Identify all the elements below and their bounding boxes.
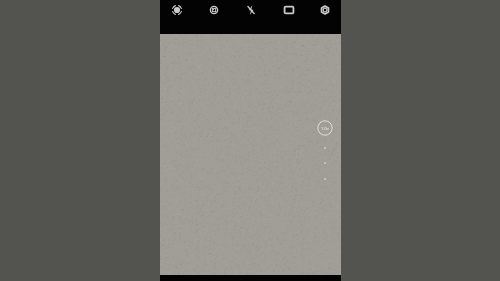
button[interactable]: Aspect ratio <box>279 0 299 20</box>
button[interactable]: Flash off <box>241 0 261 20</box>
staticText: 1.0x <box>321 126 329 131</box>
button[interactable]: Settings <box>315 0 335 20</box>
button[interactable]: Zoom level 1.0x <box>317 120 333 136</box>
button[interactable]: Motion photo <box>204 0 224 20</box>
button[interactable]: Night mode <box>167 0 187 20</box>
